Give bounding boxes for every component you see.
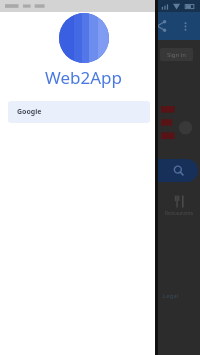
staticText: Restaurants bbox=[165, 210, 194, 217]
button[interactable]: Share bbox=[150, 15, 172, 37]
button[interactable]: Restaurants bbox=[158, 196, 200, 217]
staticText: Legal bbox=[163, 292, 179, 300]
button[interactable]: More options bbox=[175, 16, 195, 36]
staticText: Google bbox=[17, 107, 42, 117]
button[interactable]: Search bbox=[158, 159, 198, 182]
button[interactable]: Sign in bbox=[160, 48, 193, 61]
staticText: Sign in bbox=[167, 51, 187, 59]
button[interactable]: Google bbox=[8, 101, 150, 123]
staticText: Web2App bbox=[45, 66, 123, 89]
